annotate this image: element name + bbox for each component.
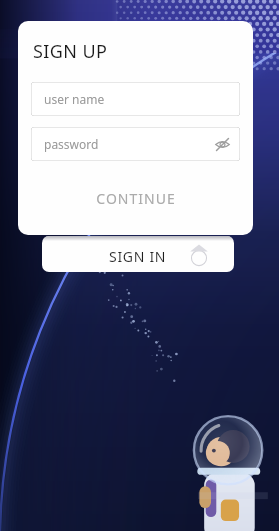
- staticText: CONTINUE: [96, 189, 176, 208]
- button[interactable]: SIGN IN: [42, 236, 234, 272]
- staticText: user name: [44, 91, 105, 107]
- staticText: SIGN IN: [109, 247, 167, 266]
- staticText: password: [44, 136, 99, 152]
- staticText: SIGN UP: [33, 39, 108, 64]
- button[interactable]: user name: [31, 82, 240, 116]
- other: Submit: [186, 243, 212, 269]
- button[interactable]: password: [31, 127, 240, 161]
- other: Show password: [214, 136, 231, 153]
- button[interactable]: CONTINUE: [18, 181, 253, 215]
